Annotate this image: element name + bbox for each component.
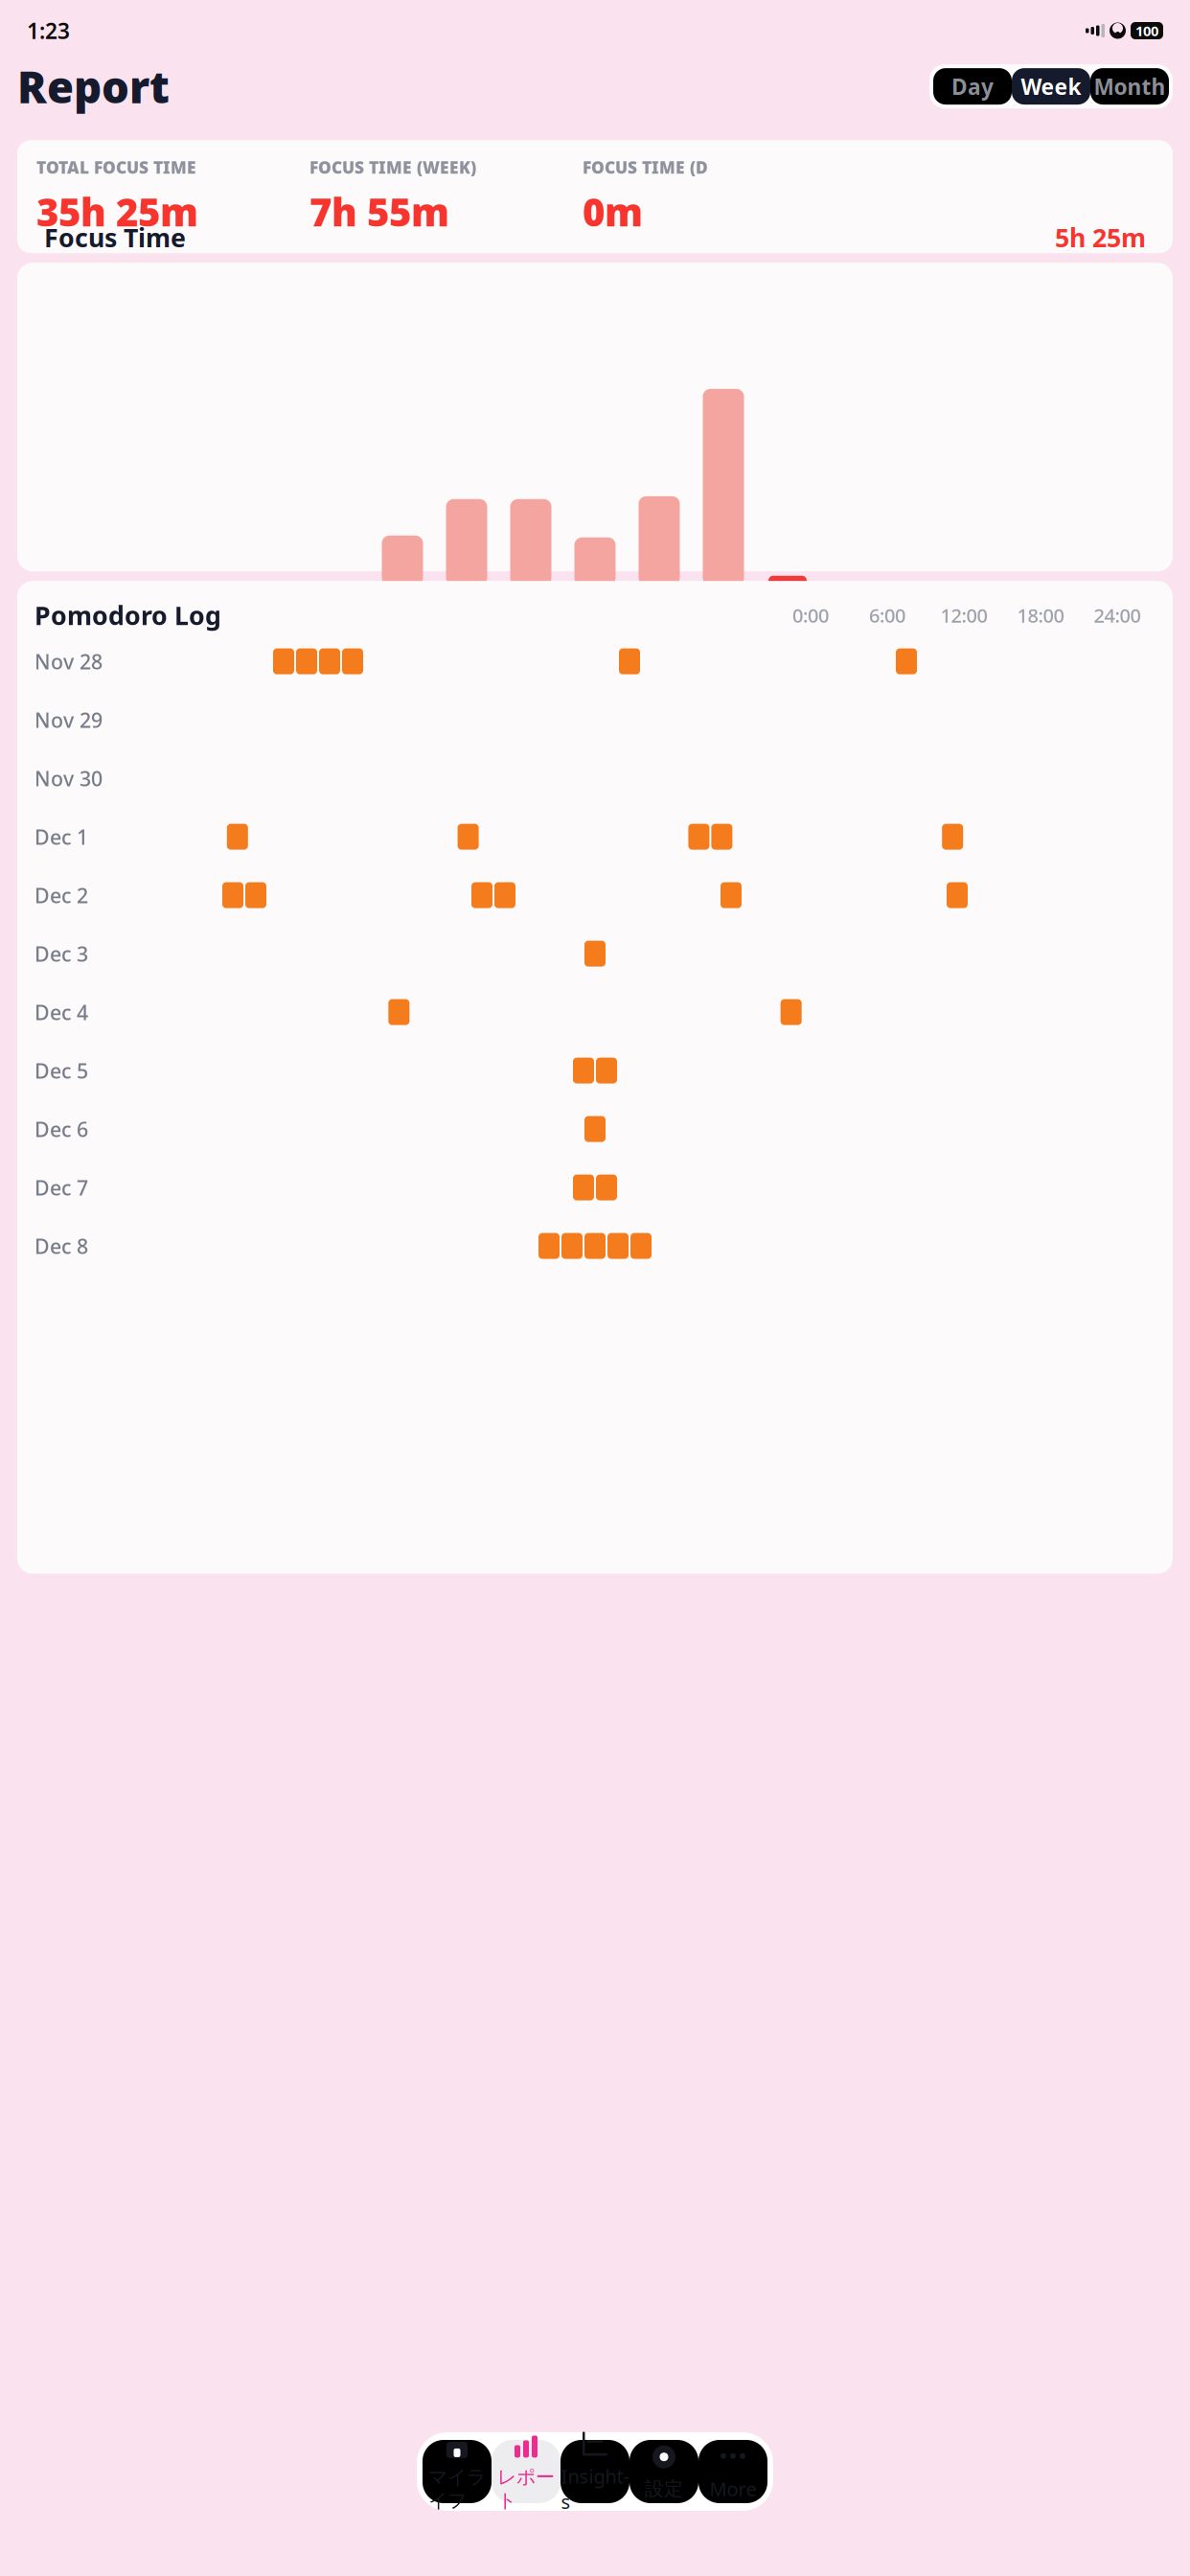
staticText: Dec 3 xyxy=(34,940,88,967)
button[interactable]: Day xyxy=(933,68,1012,105)
staticText: Dec 5 xyxy=(34,1057,88,1084)
staticText: Dec 4 xyxy=(34,998,88,1026)
button[interactable]: マイライフ xyxy=(423,2440,492,2503)
staticText: Pomodoro Log xyxy=(34,598,221,632)
staticText: レポート xyxy=(497,2465,555,2512)
staticText: Day xyxy=(951,72,994,101)
staticText: 18:00 xyxy=(1017,602,1064,628)
staticText: FOCUS TIME (D xyxy=(583,156,708,178)
staticText: Nov 29 xyxy=(34,706,103,733)
staticText: 1:23 xyxy=(27,16,70,45)
staticText: 0m xyxy=(583,186,643,237)
staticText: 100 xyxy=(1135,21,1158,40)
staticText: 12:00 xyxy=(940,602,987,628)
staticText: FOCUS TIME (WEEK) xyxy=(309,156,476,178)
staticText: Week xyxy=(1021,72,1081,101)
staticText: Dec 2 xyxy=(34,882,88,909)
staticText: 24:00 xyxy=(1094,602,1141,628)
staticText: 7h 55m xyxy=(309,186,449,237)
staticText: Dec 1 xyxy=(34,823,88,850)
staticText: Month xyxy=(1094,72,1166,101)
button[interactable]: 設定 xyxy=(629,2440,698,2503)
staticText: Nov 30 xyxy=(34,765,103,792)
staticText: 0:00 xyxy=(792,602,829,628)
staticText: 5h 25m xyxy=(1055,221,1146,254)
staticText: More xyxy=(709,2476,756,2502)
staticText: Report xyxy=(17,57,170,115)
staticText: Nov 28 xyxy=(34,648,103,675)
staticText: Focus Time xyxy=(44,221,186,254)
staticText: Dec 7 xyxy=(34,1174,88,1201)
button[interactable]: Month xyxy=(1090,68,1169,105)
button[interactable]: レポート xyxy=(492,2440,561,2503)
staticText: Insights xyxy=(561,2463,629,2514)
staticText: Dec 8 xyxy=(34,1232,88,1259)
staticText: Tue xyxy=(771,592,804,618)
staticText: Dec 6 xyxy=(34,1115,88,1143)
staticText: マイライフ xyxy=(428,2465,486,2512)
staticText: TOTAL FOCUS TIME xyxy=(36,156,196,178)
staticText: 設定 xyxy=(645,2477,683,2501)
button[interactable]: More xyxy=(698,2440,767,2503)
button[interactable]: Insights xyxy=(561,2440,629,2503)
staticText: 6:00 xyxy=(869,602,905,628)
staticText: 35h 25m xyxy=(36,186,198,237)
button[interactable]: Week xyxy=(1012,68,1090,105)
